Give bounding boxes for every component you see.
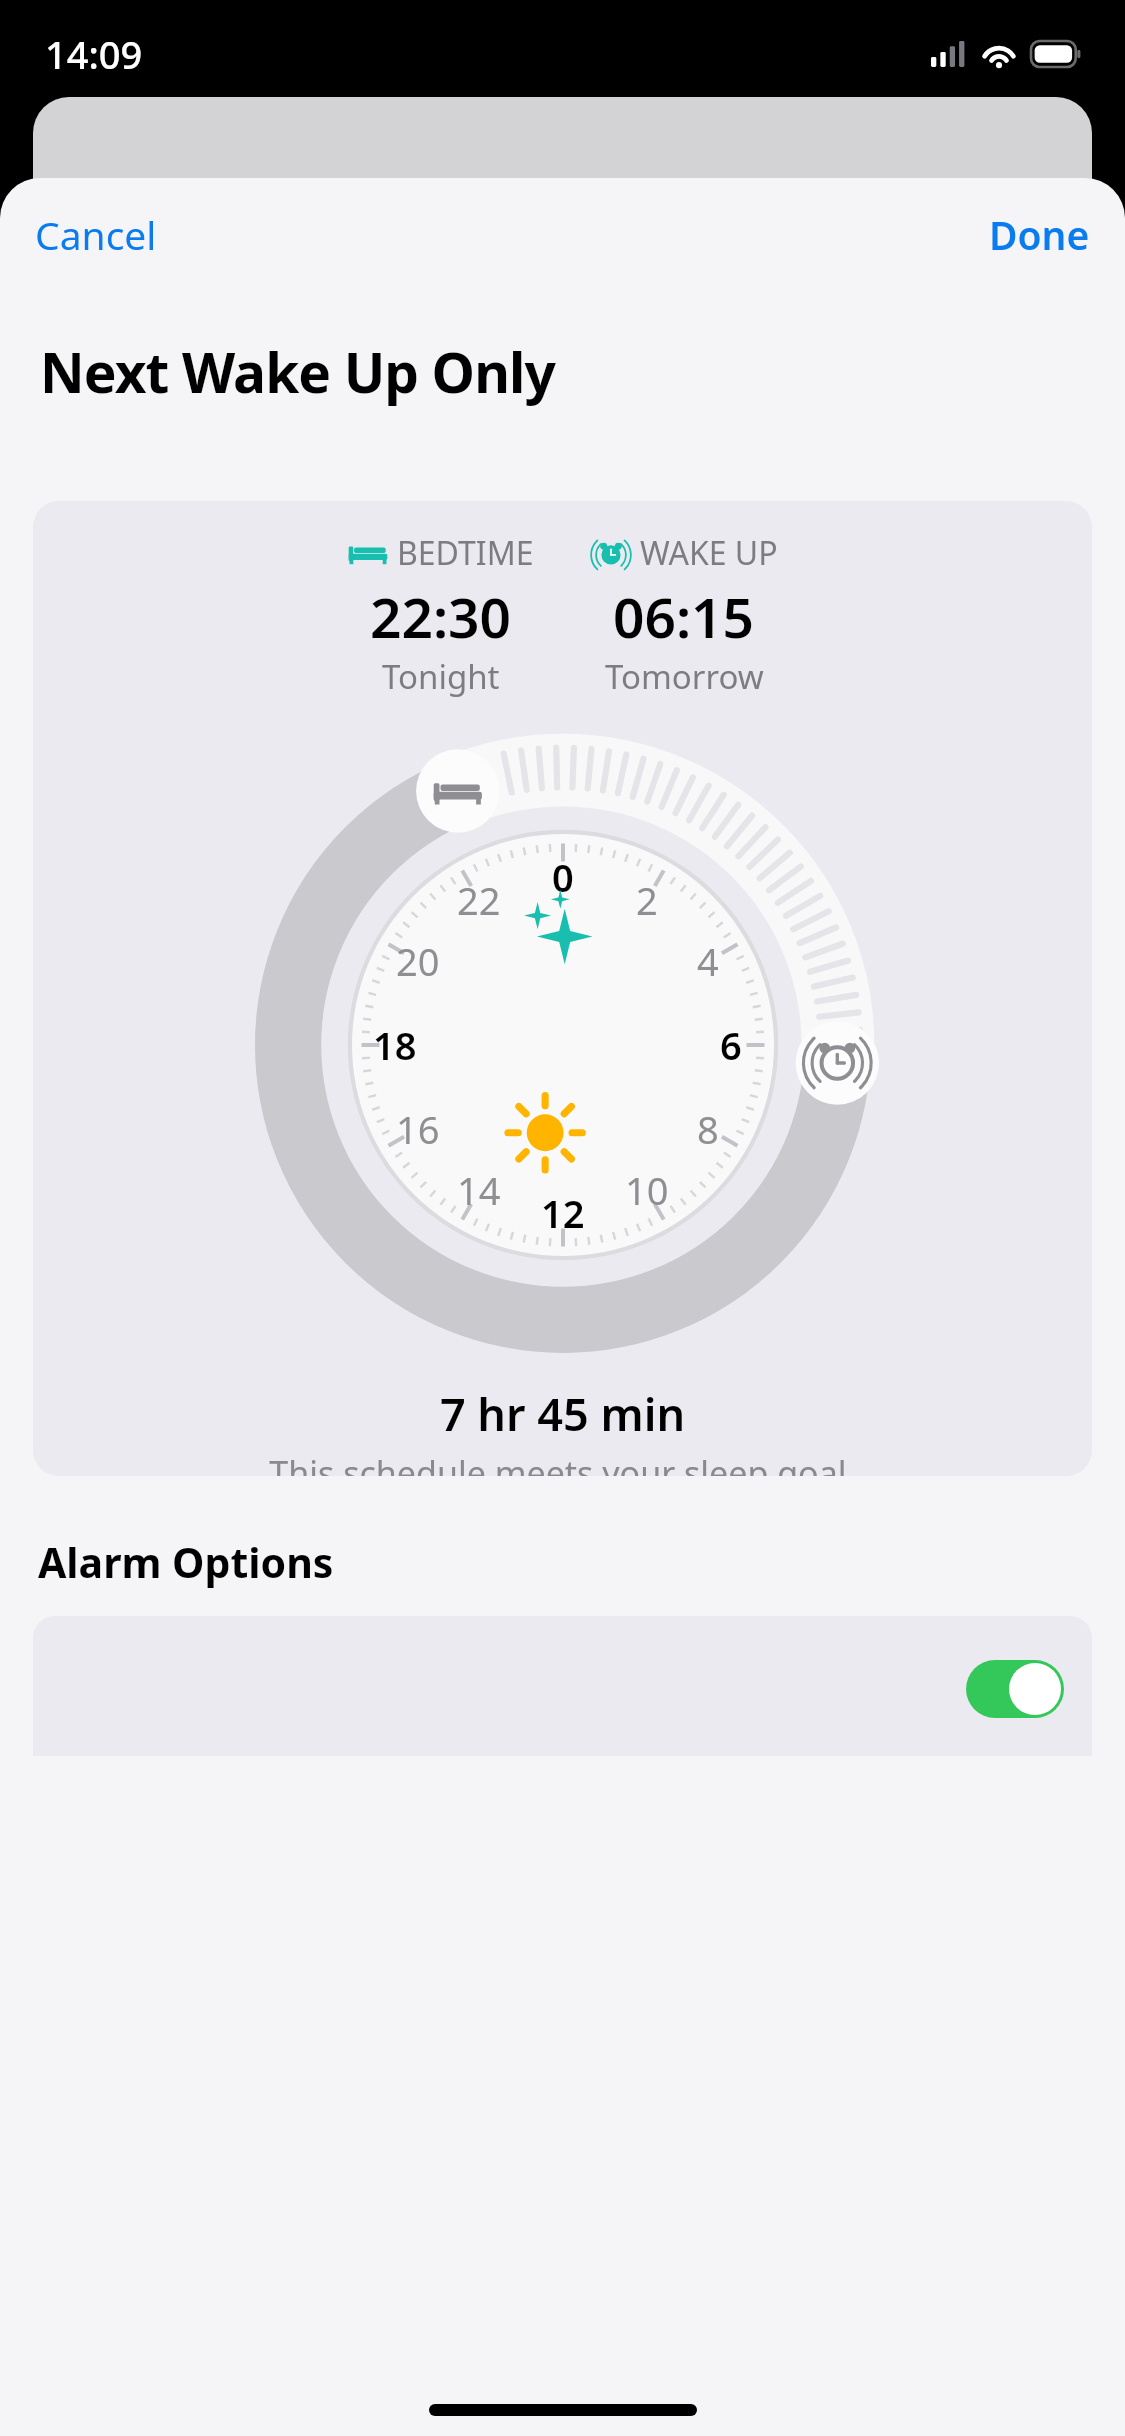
button[interactable]: Done [967, 192, 1125, 277]
staticText: 12 [541, 1187, 585, 1239]
staticText: 18 [373, 1019, 417, 1071]
staticText: 06:15 [613, 579, 755, 654]
staticText: Tomorrow [605, 654, 764, 699]
staticText: BEDTIME [397, 531, 534, 575]
staticText: Done [989, 208, 1090, 261]
staticText: 4 [697, 935, 719, 987]
staticText: WAKE UP [640, 531, 778, 575]
staticText: 7 hr 45 min [33, 1383, 1092, 1444]
staticText: 20 [396, 935, 440, 987]
staticText: 14 [457, 1164, 501, 1216]
button[interactable]: Alarm enabled toggle [33, 1616, 1092, 1756]
staticText: Alarm Options [38, 1534, 334, 1590]
staticText: 14:09 [45, 28, 143, 80]
staticText: 0 [552, 851, 574, 903]
staticText: 10 [625, 1164, 669, 1216]
staticText: 22 [457, 874, 501, 926]
staticText: 22:30 [370, 579, 512, 654]
staticText: 16 [396, 1103, 440, 1155]
staticText: 2 [636, 874, 658, 926]
staticText: Tonight [382, 654, 500, 699]
staticText: This schedule meets your sleep goal. [33, 1450, 1092, 1476]
staticText: Cancel [35, 208, 157, 261]
button[interactable]: Alarm enabled toggle [966, 1660, 1064, 1718]
button[interactable]: Cancel [0, 192, 179, 277]
staticText: 8 [697, 1103, 719, 1155]
staticText: Next Wake Up Only [40, 334, 556, 409]
staticText: 6 [720, 1019, 742, 1071]
button[interactable]: BEDTIME [33, 501, 1092, 1476]
